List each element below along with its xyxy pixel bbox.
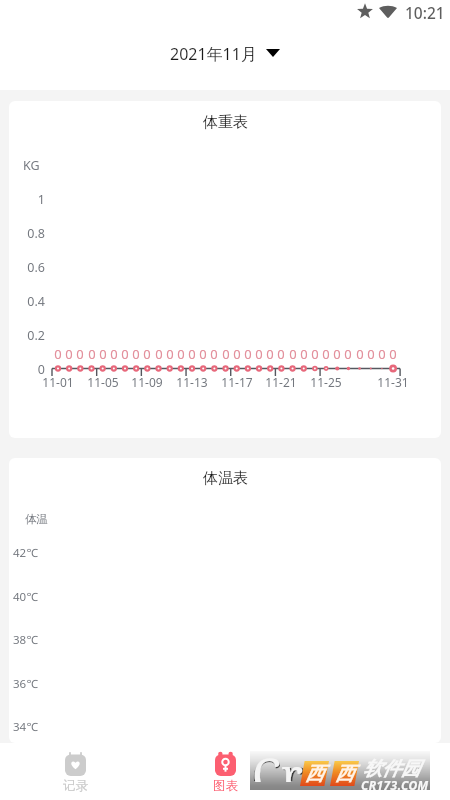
staticText: 体温 xyxy=(25,512,48,526)
staticText: 0 xyxy=(9,361,45,378)
staticText: 0 xyxy=(82,345,102,363)
staticText: 0 xyxy=(249,345,269,363)
staticText: 0 xyxy=(171,345,191,363)
staticText: 0 xyxy=(216,345,236,363)
staticText: 图表 xyxy=(213,778,238,794)
staticText: 2021年11月 xyxy=(170,43,257,65)
staticText: 40℃ xyxy=(13,589,38,605)
staticText: 0 xyxy=(204,345,224,363)
staticText: 0 xyxy=(160,345,180,363)
staticText: 0.4 xyxy=(9,293,45,310)
staticText: 0 xyxy=(59,345,79,363)
staticText: 11-05 xyxy=(83,374,123,390)
staticText: 0.2 xyxy=(9,327,45,344)
staticText: 0 xyxy=(260,345,280,363)
staticText: 34℃ xyxy=(13,719,38,735)
staticText: 0 xyxy=(70,345,90,363)
staticText: 0 xyxy=(104,345,124,363)
staticText: 0 xyxy=(372,345,392,363)
staticText: 0 xyxy=(182,345,202,363)
button[interactable]: 记录 xyxy=(0,743,150,800)
staticText: 体温表 xyxy=(203,469,248,488)
button[interactable]: 图表 xyxy=(150,743,300,800)
staticText: 1 xyxy=(9,191,45,208)
staticText: 西 xyxy=(305,762,324,786)
staticText: 记录 xyxy=(63,778,88,794)
staticText: Cr xyxy=(252,743,303,782)
staticText: 软件园 xyxy=(363,757,420,781)
staticText: 0 xyxy=(115,345,135,363)
staticText: 0 xyxy=(227,345,247,363)
staticText: 0 xyxy=(48,345,68,363)
staticText: 11-01 xyxy=(38,374,78,390)
staticText: 0 xyxy=(283,345,303,363)
staticText: 0 xyxy=(338,345,358,363)
staticText: 0.8 xyxy=(9,225,45,242)
staticText: 0 xyxy=(327,345,347,363)
staticText: 0 xyxy=(137,345,157,363)
staticText: 西 xyxy=(335,762,354,786)
staticText: 0 xyxy=(350,345,370,363)
button[interactable]: 2021年11月 xyxy=(160,35,290,73)
staticText: 0 xyxy=(305,345,325,363)
staticText: 11-17 xyxy=(217,374,257,390)
staticText: 0 xyxy=(316,345,336,363)
staticText: 0 xyxy=(271,345,291,363)
staticText: 0 xyxy=(93,345,113,363)
staticText: 42℃ xyxy=(13,545,38,561)
staticText: 0 xyxy=(238,345,258,363)
staticText: 0.6 xyxy=(9,259,45,276)
staticText: 0 xyxy=(361,345,381,363)
staticText: 0 xyxy=(193,345,213,363)
staticText: KG xyxy=(23,157,40,174)
staticText: 36℃ xyxy=(13,676,38,692)
staticText: 0 xyxy=(294,345,314,363)
staticText: 38℃ xyxy=(13,632,38,648)
staticText: 11-31 xyxy=(373,374,413,390)
staticText: 0 xyxy=(383,345,403,363)
staticText: 11-09 xyxy=(127,374,167,390)
staticText: 10:21 xyxy=(405,2,445,23)
staticText: CR173.COM xyxy=(361,777,429,793)
staticText: 11-13 xyxy=(172,374,212,390)
staticText: 体重表 xyxy=(203,113,248,132)
staticText: Cr xyxy=(251,742,306,781)
staticText: 11-21 xyxy=(261,374,301,390)
staticText: 0 xyxy=(126,345,146,363)
staticText: 0 xyxy=(149,345,169,363)
staticText: 11-25 xyxy=(306,374,346,390)
